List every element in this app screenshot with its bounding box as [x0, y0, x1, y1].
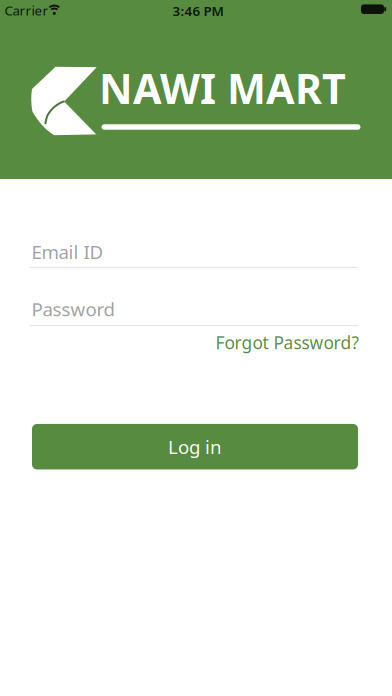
button[interactable]: Password	[30, 298, 358, 332]
staticText: 3:46 PM	[172, 2, 223, 20]
staticText: Password	[31, 297, 114, 321]
staticText: Forgot Password?	[215, 331, 359, 354]
staticText: Carrier	[4, 1, 48, 19]
button[interactable]: Log in	[32, 424, 358, 469]
staticText: Email ID	[31, 239, 103, 264]
button[interactable]: Email ID	[30, 241, 358, 275]
staticText: Log in	[168, 434, 222, 459]
staticText: NAWI MART	[99, 61, 346, 115]
button[interactable]: Forgot Password?	[139, 330, 359, 354]
